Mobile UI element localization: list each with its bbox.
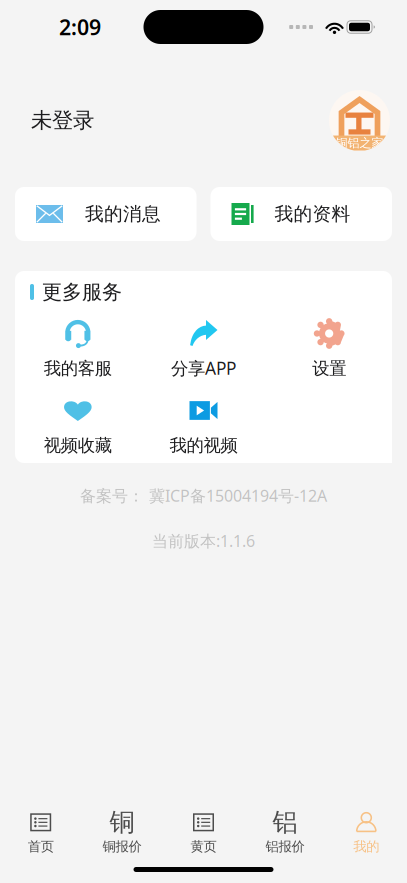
staticText: 首页 [28, 838, 54, 855]
button[interactable]: 首页 [0, 812, 81, 854]
button[interactable]: Profile photo [329, 90, 390, 151]
button[interactable]: 黄页 [163, 812, 244, 854]
staticText: 我的视频 [169, 435, 237, 456]
button[interactable]: 我的客服 [15, 309, 141, 386]
staticText: 铜铝之家 [335, 136, 383, 150]
staticText: 黄页 [190, 838, 216, 855]
staticText: 更多服务 [42, 280, 122, 304]
button[interactable]: 铝 [244, 812, 326, 854]
button[interactable]: 分享APP [141, 309, 266, 386]
staticText: 当前版本:1.1.6 [152, 530, 255, 551]
staticText: 铝报价 [265, 838, 304, 855]
button[interactable]: 我的资料 [210, 187, 392, 241]
staticText: 分享APP [171, 356, 236, 379]
staticText: 铝 [272, 807, 297, 838]
staticText: 视频收藏 [44, 435, 112, 456]
button[interactable]: 设置 [266, 309, 392, 386]
staticText: 备案号： 冀ICP备15004194号-12A [80, 485, 327, 506]
staticText: 我的 [353, 838, 379, 855]
staticText: 2:09 [59, 13, 101, 41]
staticText: 铜报价 [103, 838, 142, 855]
staticText: 铜 [110, 807, 135, 838]
button[interactable]: 我的消息 [15, 187, 196, 241]
staticText: 未登录 [31, 107, 94, 134]
staticText: 我的消息 [85, 202, 161, 225]
button[interactable]: 我的视频 [141, 386, 266, 463]
button[interactable]: 我的 [326, 812, 407, 854]
button[interactable]: 视频收藏 [15, 386, 141, 463]
staticText: 我的资料 [274, 202, 350, 225]
staticText: 设置 [312, 358, 346, 379]
button[interactable]: 铜 [81, 812, 163, 854]
staticText: 我的客服 [44, 358, 112, 379]
